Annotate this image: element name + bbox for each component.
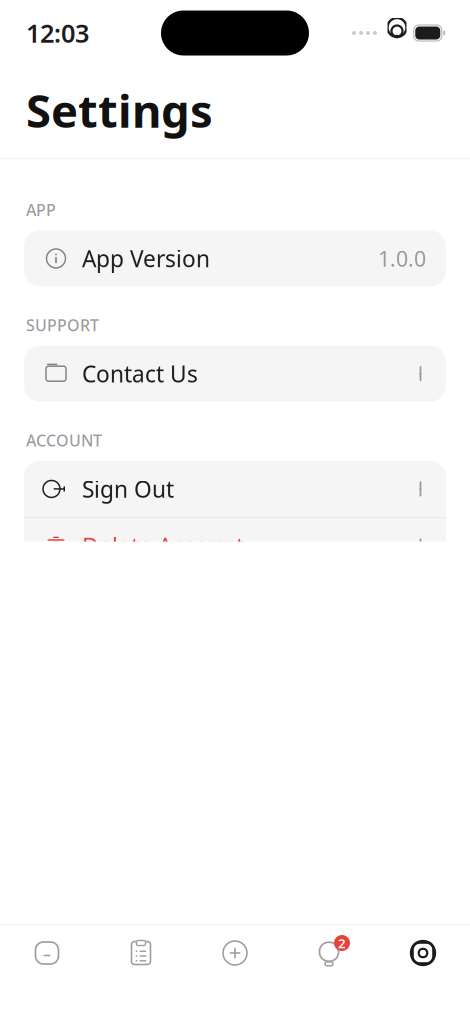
button[interactable]: Settings (376, 925, 470, 981)
button[interactable]: Add (188, 925, 282, 981)
button[interactable]: Tasks (94, 925, 188, 981)
button[interactable]: Sign Out (24, 461, 446, 517)
button[interactable]: Home (0, 925, 94, 981)
staticText: Sign Out (82, 474, 174, 504)
button[interactable]: Notifications, 2 new (282, 925, 376, 981)
staticText: Settings (26, 80, 213, 140)
staticText: App Version (82, 243, 210, 273)
staticText: 12:03 (26, 16, 89, 50)
staticText: Contact Us (82, 359, 198, 389)
staticText: 1.0.0 (378, 244, 426, 273)
staticText: SUPPORT (26, 314, 99, 336)
button[interactable]: Contact Us (24, 346, 446, 402)
staticText: ACCOUNT (26, 430, 102, 451)
staticText: Delete Account (82, 531, 244, 561)
button[interactable]: App Version (24, 230, 446, 286)
staticText: APP (26, 199, 56, 220)
staticText: 2 (338, 934, 346, 952)
button[interactable]: Delete Account (24, 518, 446, 574)
